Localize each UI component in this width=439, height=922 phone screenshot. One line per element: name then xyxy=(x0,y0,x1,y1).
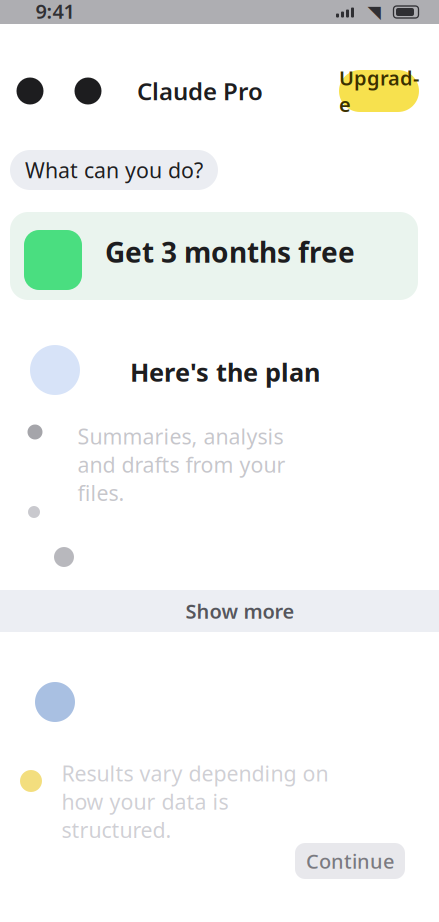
staticText: Results vary depending on how your data … xyxy=(61,759,328,844)
staticText: Summaries, analysis and drafts from your… xyxy=(77,422,285,507)
staticText: Get 3 months free xyxy=(105,233,355,271)
staticText: Claude Pro xyxy=(137,75,263,107)
button[interactable]: New chat xyxy=(74,77,101,104)
staticText: 9:41 xyxy=(35,0,74,24)
staticText: Here's the plan xyxy=(130,355,320,389)
button[interactable]: Claude Pro xyxy=(137,74,267,108)
staticText: Continue xyxy=(306,848,394,874)
staticText: ◥ xyxy=(367,2,380,22)
staticText: Upgrade xyxy=(339,64,419,117)
staticText: What can you do? xyxy=(25,156,203,184)
button[interactable]: Continue xyxy=(295,843,405,879)
staticText: Show more xyxy=(185,598,294,624)
button[interactable]: Upgrade xyxy=(339,70,419,112)
button[interactable]: Menu xyxy=(16,77,43,104)
